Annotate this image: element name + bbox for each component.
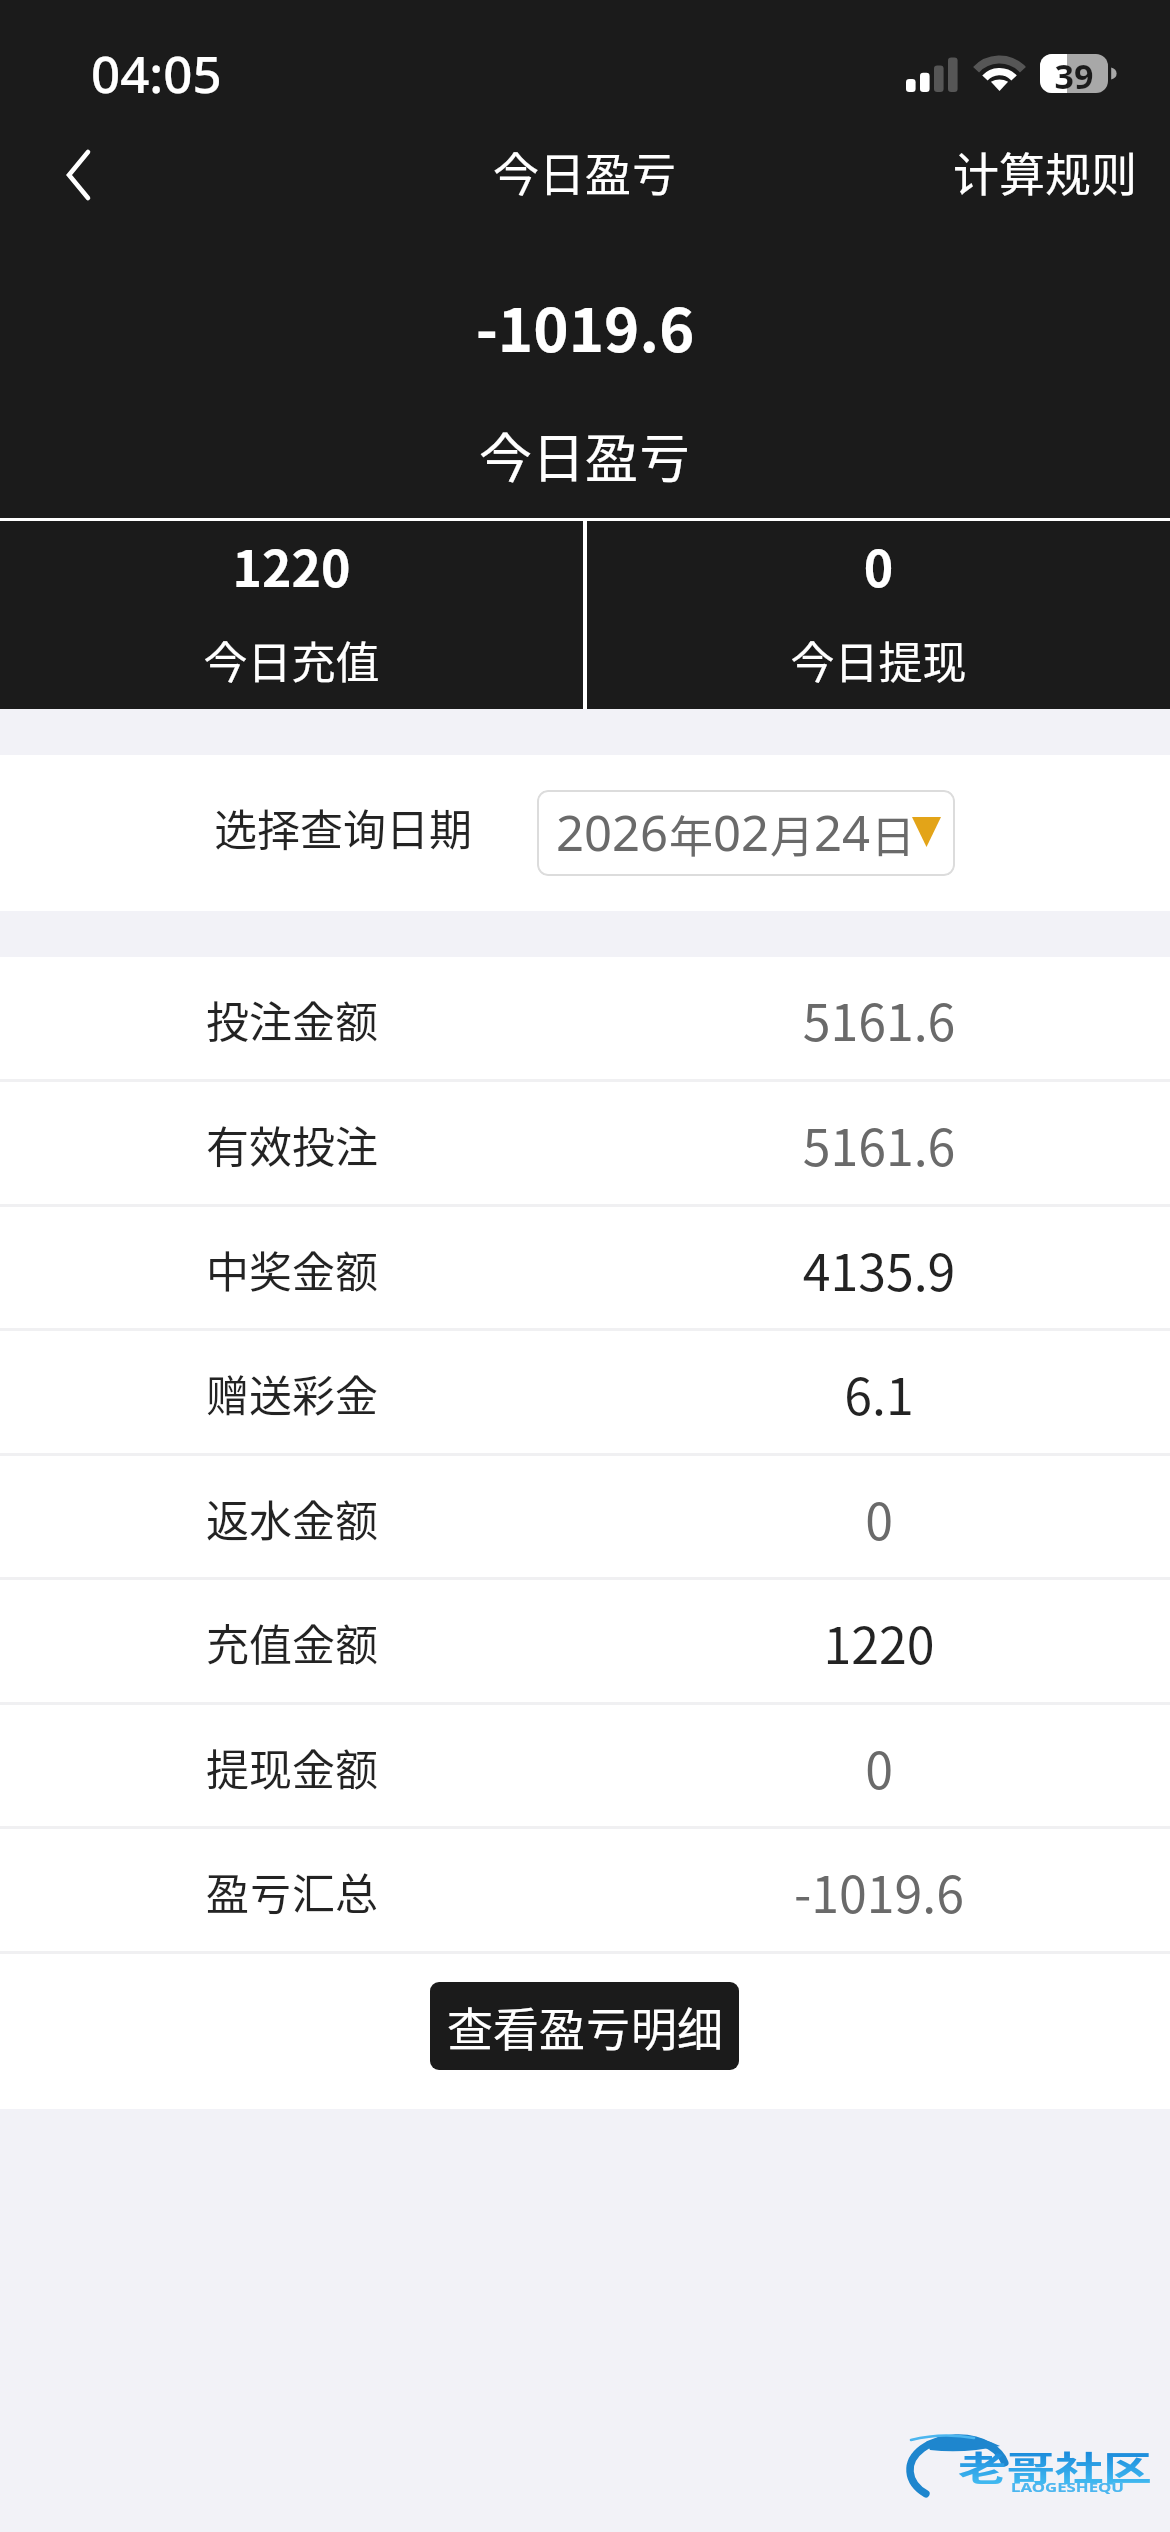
button[interactable]: 1220 [0,521,583,709]
staticText: 0 [587,529,1170,599]
staticText: 计算规则 [953,138,1137,205]
staticText: 1220 [0,529,583,599]
button[interactable]: 投注金额 [0,957,1170,1079]
staticText: -1019.6 [0,282,1170,369]
staticText: 02 [713,799,770,866]
staticText: 盈亏汇总 [206,1860,378,1922]
staticText: 今日提现 [587,628,1170,692]
staticText: 04:05 [91,38,222,107]
staticText: 有效投注 [206,1113,378,1175]
staticText: 赠送彩金 [206,1362,378,1424]
staticText: 0 [729,1731,1029,1803]
staticText: 查看盈亏明细 [447,1993,723,2060]
button[interactable]: 查看盈亏明细 [430,1982,739,2070]
button[interactable]: 赠送彩金 [0,1331,1170,1453]
button[interactable]: 2026 [537,790,955,876]
staticText: 4135.9 [729,1233,1029,1305]
staticText: 选择查询日期 [214,796,472,858]
button[interactable]: 计算规则 [915,112,1170,231]
staticText: 39 [1040,54,1108,92]
staticText: 5161.6 [729,1108,1029,1180]
staticText: 年 [669,802,713,866]
staticText: 老哥社区 [958,2441,1152,2490]
staticText: LAOGESHEQU [1011,2478,1124,2495]
staticText: -1019.6 [729,1855,1029,1927]
staticText: 今日盈亏 [0,417,1170,494]
staticText: 6.1 [729,1357,1029,1429]
button[interactable]: 有效投注 [0,1082,1170,1204]
staticText: 24 [814,799,871,866]
staticText: 投注金额 [206,988,378,1050]
button[interactable]: Back [28,125,128,225]
staticText: 提现金额 [206,1736,378,1798]
staticText: 日 [871,802,915,866]
button[interactable]: 盈亏汇总 [0,1829,1170,1951]
staticText: 2026 [556,799,669,866]
staticText: 月 [770,802,814,866]
button[interactable]: 0 [587,521,1170,709]
button[interactable]: 返水金额 [0,1456,1170,1577]
staticText: 今日充值 [0,628,583,692]
staticText: 5161.6 [729,983,1029,1055]
staticText: 今日盈亏 [493,138,677,205]
staticText: 中奖金额 [206,1238,378,1300]
staticText: 返水金额 [206,1487,378,1549]
staticText: 1220 [729,1606,1029,1678]
staticText: 充值金额 [206,1611,378,1673]
button[interactable]: 提现金额 [0,1705,1170,1826]
button[interactable]: 充值金额 [0,1580,1170,1702]
button[interactable]: 中奖金额 [0,1207,1170,1328]
staticText: 0 [729,1482,1029,1554]
